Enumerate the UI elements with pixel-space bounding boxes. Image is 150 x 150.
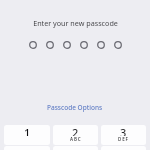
staticText: 2 bbox=[72, 125, 79, 136]
button[interactable]: 1 bbox=[4, 125, 50, 145]
staticText: Enter your new passcode bbox=[33, 18, 118, 28]
button[interactable]: Passcode Options bbox=[43, 101, 107, 114]
staticText: DEF bbox=[118, 136, 129, 142]
staticText: Passcode Options bbox=[47, 103, 103, 112]
other: Passcode entry, 6 digits bbox=[29, 41, 122, 49]
button[interactable]: 2 ABC bbox=[53, 125, 98, 145]
staticText: 1 bbox=[24, 125, 31, 136]
staticText: ABC bbox=[70, 136, 82, 142]
staticText: 3 bbox=[120, 125, 127, 136]
button[interactable]: 3 DEF bbox=[101, 125, 146, 145]
